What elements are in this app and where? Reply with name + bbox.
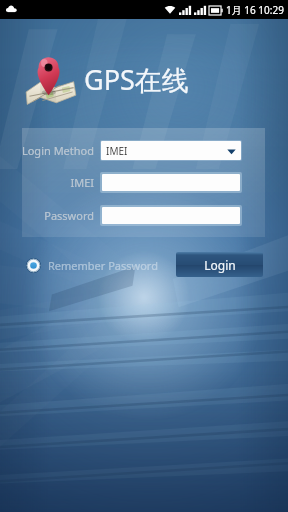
button[interactable]: Remember Password	[26, 253, 158, 277]
staticText: IMEI	[106, 144, 225, 158]
staticText: 1月 16 10:29	[226, 3, 284, 17]
button[interactable]: IMEI	[101, 141, 241, 160]
other: Signal	[179, 5, 191, 15]
staticText: Login Method	[21, 143, 94, 158]
other: Signal	[194, 5, 206, 15]
staticText: Login	[204, 257, 236, 273]
staticText: GPS在线	[84, 61, 189, 98]
other: Sync	[5, 3, 18, 16]
button[interactable]: Login	[176, 252, 263, 277]
other: GPS logo	[24, 52, 78, 106]
staticText: IMEI	[70, 175, 94, 190]
other: Wi-Fi	[164, 4, 176, 16]
staticText: Remember Password	[48, 258, 158, 273]
staticText: Password	[44, 208, 94, 223]
other: Battery	[209, 6, 223, 15]
